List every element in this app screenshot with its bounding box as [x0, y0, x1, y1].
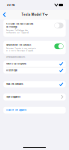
- staticText: 22:16: [7, 3, 15, 7]
- staticText: Autoriser l'accès à vos contacts: [6, 47, 36, 49]
- staticText: Type d'appareil: [6, 96, 21, 98]
- staticText: Oublier cet appareil: [6, 109, 27, 111]
- button[interactable]: Type d'appareil: [3, 93, 66, 100]
- staticText: Historique: [6, 69, 17, 72]
- staticText: Tesla Model Y: [22, 13, 45, 16]
- staticText: notifications sur l'appareil.: [6, 31, 29, 34]
- button[interactable]: Favoris du téléphone: [3, 61, 66, 67]
- staticText: et à votre historique d'appels.: [6, 49, 34, 52]
- button[interactable]: Toggle: [54, 23, 63, 28]
- staticText: AFFICHAGE DES CONTACTS: [6, 56, 25, 58]
- staticText: Tous les contacts: [6, 83, 23, 86]
- staticText: Afficher les notifications: [6, 23, 33, 25]
- staticText: Autoriser l'affichage des: [6, 29, 28, 31]
- staticText: Synchroniser les contacts: [6, 43, 31, 46]
- button[interactable]: Toggle: [54, 43, 63, 49]
- button[interactable]: Back: [0, 10, 10, 19]
- staticText: de message: [6, 25, 17, 28]
- staticText: Favoris du téléphone: [6, 62, 26, 65]
- button[interactable]: Tous les contacts: [3, 81, 66, 87]
- button[interactable]: Historique: [3, 67, 66, 73]
- button[interactable]: Oublier cet appareil: [3, 107, 66, 113]
